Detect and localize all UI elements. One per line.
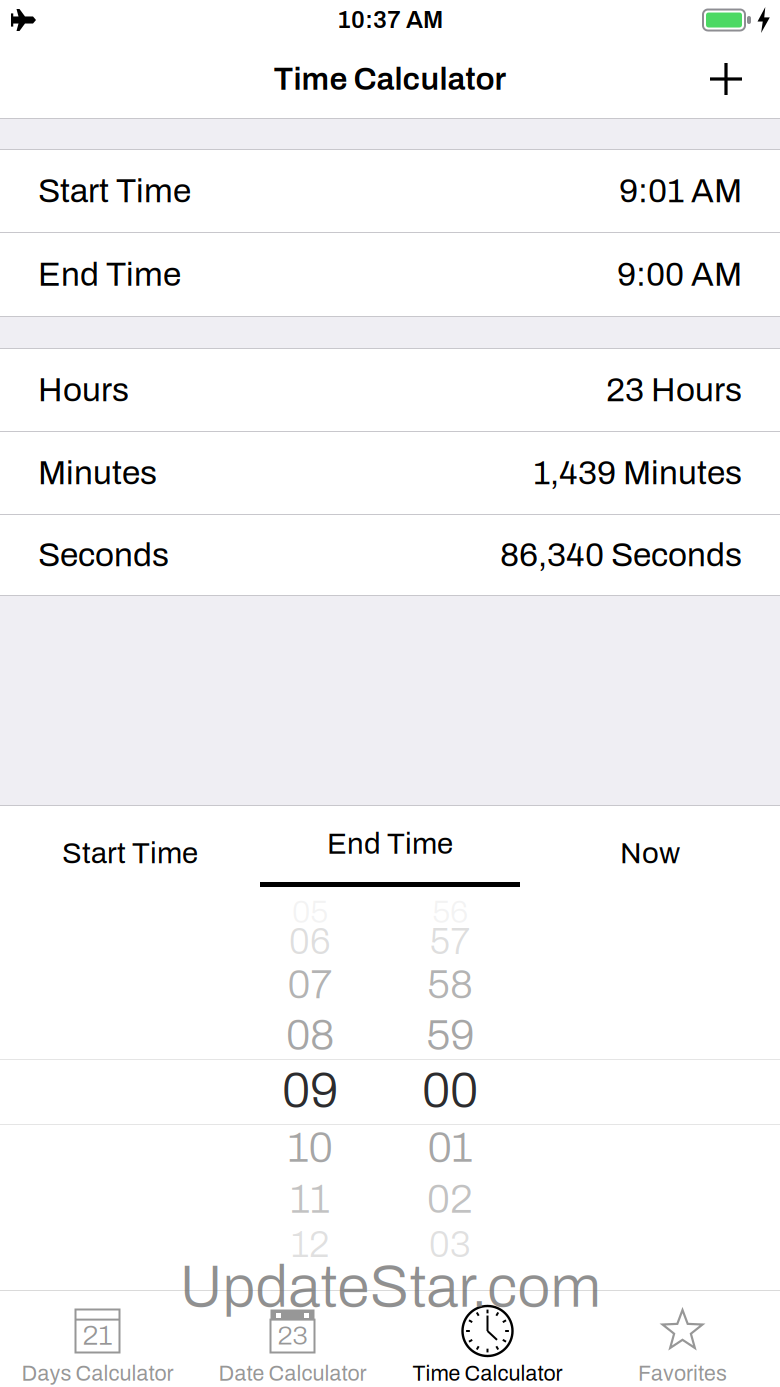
staticText: 03 xyxy=(429,1225,471,1265)
button[interactable]: Time Calculator xyxy=(390,1291,585,1387)
button[interactable]: 21 xyxy=(0,1291,195,1387)
staticText: End Time xyxy=(327,828,453,860)
staticText: 86,340 Seconds xyxy=(500,537,742,573)
staticText: 00 xyxy=(422,1064,478,1117)
staticText: 02 xyxy=(427,1178,473,1221)
staticText: 08 xyxy=(286,1012,334,1058)
staticText: Time Calculator xyxy=(412,1362,562,1385)
staticText: Start Time xyxy=(62,837,198,869)
button[interactable]: Now xyxy=(520,806,780,901)
staticText: Date Calculator xyxy=(218,1362,366,1385)
staticText: Hours xyxy=(38,372,129,408)
button[interactable]: Start Time xyxy=(0,806,260,901)
staticText: 09 xyxy=(282,1064,338,1117)
button[interactable]: Seconds xyxy=(0,515,780,595)
staticText: Time Calculator xyxy=(273,62,506,96)
staticText: 1,439 Minutes xyxy=(533,455,742,491)
staticText: Seconds xyxy=(38,537,169,573)
staticText: 21 xyxy=(82,1320,112,1351)
staticText: 01 xyxy=(427,1124,472,1171)
button[interactable]: 23 xyxy=(195,1291,390,1387)
button[interactable]: Favorites xyxy=(585,1291,780,1387)
button[interactable]: Hours xyxy=(0,349,780,431)
staticText: End Time xyxy=(38,256,181,293)
staticText: 56 xyxy=(432,895,468,929)
button[interactable]: Minutes xyxy=(0,432,780,514)
button[interactable]: End Time xyxy=(0,233,780,316)
staticText: 12 xyxy=(291,1225,329,1265)
button[interactable]: Start Time xyxy=(0,150,780,232)
staticText: Favorites xyxy=(638,1362,727,1385)
button[interactable]: Add xyxy=(694,47,758,111)
staticText: Now xyxy=(620,837,680,869)
staticText: 07 xyxy=(287,963,332,1007)
staticText: 06 xyxy=(289,922,331,962)
staticText: 23 Hours xyxy=(606,372,742,408)
staticText: 9:01 AM xyxy=(619,173,742,209)
staticText: 57 xyxy=(429,922,470,962)
staticText: 05 xyxy=(292,895,328,929)
button[interactable]: End Time xyxy=(260,806,520,901)
staticText: Minutes xyxy=(38,455,157,491)
staticText: 58 xyxy=(427,963,473,1007)
staticText: UpdateStar.com xyxy=(179,1255,600,1319)
staticText: 10 xyxy=(287,1124,332,1171)
staticText: Start Time xyxy=(38,173,191,209)
staticText: 23 xyxy=(277,1321,307,1350)
staticText: Days Calculator xyxy=(21,1362,173,1385)
staticText: 59 xyxy=(426,1012,474,1058)
staticText: 11 xyxy=(290,1178,330,1221)
staticText: 10:37 AM xyxy=(337,7,443,33)
staticText: 9:00 AM xyxy=(617,256,742,293)
